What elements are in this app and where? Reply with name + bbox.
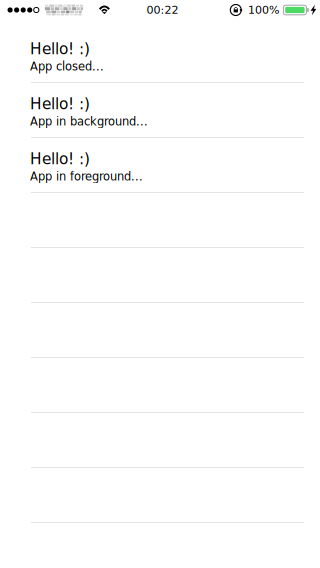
button[interactable]: Hello! :)	[0, 83, 320, 138]
button[interactable]: Hello! :)	[0, 28, 320, 83]
staticText: 00:22	[146, 4, 178, 16]
staticText: Hello! :)	[30, 95, 90, 113]
staticText: Hello! :)	[30, 150, 90, 168]
staticText: App closed...	[30, 60, 104, 73]
button[interactable]: Hello! :)	[0, 138, 320, 193]
staticText: App in background...	[30, 115, 148, 128]
staticText: Hello! :)	[30, 40, 90, 58]
staticText: 100%	[248, 4, 280, 16]
staticText: App in foreground...	[30, 170, 143, 183]
